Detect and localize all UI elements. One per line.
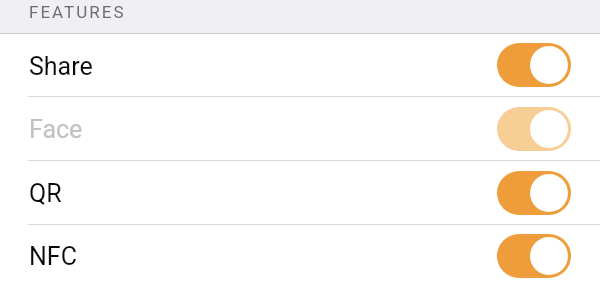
button[interactable]: Share xyxy=(0,34,600,97)
staticText: Share xyxy=(29,52,93,81)
button[interactable]: QR xyxy=(0,161,600,225)
staticText: QR xyxy=(29,179,62,208)
staticText: FEATURES xyxy=(29,2,126,22)
button[interactable]: NFC toggle xyxy=(497,234,571,278)
button[interactable]: Share toggle xyxy=(497,43,571,87)
staticText: Face xyxy=(29,115,83,144)
button[interactable]: Face toggle xyxy=(497,107,571,151)
button[interactable]: QR toggle xyxy=(497,171,571,215)
button[interactable]: NFC xyxy=(0,225,600,286)
staticText: NFC xyxy=(29,242,77,271)
button[interactable]: Face xyxy=(0,97,600,161)
